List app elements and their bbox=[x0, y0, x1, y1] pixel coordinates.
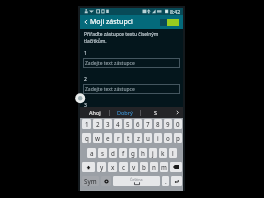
button[interactable]: d bbox=[109, 148, 117, 158]
button[interactable]: m bbox=[160, 162, 168, 172]
staticText: 1 bbox=[84, 50, 87, 57]
button[interactable]: y bbox=[97, 162, 106, 172]
staticText: 8 bbox=[156, 120, 160, 128]
button[interactable]: Zadejte text zástupce bbox=[83, 58, 180, 68]
button[interactable]: u bbox=[144, 133, 152, 143]
staticText: 7 bbox=[146, 120, 150, 128]
staticText: t bbox=[127, 134, 130, 142]
staticText: 6 bbox=[136, 120, 140, 128]
button[interactable]: Back bbox=[82, 15, 90, 29]
button[interactable]: t bbox=[124, 133, 132, 143]
staticText: n bbox=[152, 163, 156, 171]
button[interactable]: 0 bbox=[174, 119, 182, 129]
staticText: 3 bbox=[84, 102, 87, 109]
button[interactable]: More suggestions bbox=[171, 107, 183, 118]
staticText: z bbox=[137, 134, 140, 142]
staticText: m bbox=[161, 163, 167, 171]
staticText: Přiřaďte zástupce textu číselným tlačítk… bbox=[84, 31, 164, 44]
button[interactable]: k bbox=[159, 148, 167, 158]
staticText: p bbox=[176, 134, 180, 142]
staticText: 1 bbox=[85, 120, 89, 128]
staticText: e bbox=[106, 134, 110, 142]
staticText: Zadejte text zástupce bbox=[85, 60, 135, 67]
button[interactable]: g bbox=[129, 148, 137, 158]
staticText: 4 bbox=[116, 120, 120, 128]
button[interactable]: Zadejte text zástupce bbox=[83, 84, 180, 94]
button[interactable]: x bbox=[108, 162, 117, 172]
staticText: y bbox=[100, 163, 104, 171]
button[interactable]: 7 bbox=[144, 119, 152, 129]
staticText: o bbox=[166, 134, 170, 142]
button[interactable]: 8 bbox=[154, 119, 162, 129]
button[interactable]: 3 bbox=[104, 119, 112, 129]
staticText: f bbox=[122, 149, 125, 157]
button[interactable]: Ahoj bbox=[80, 107, 109, 118]
button[interactable]: 4 bbox=[114, 119, 122, 129]
staticText: j bbox=[152, 149, 154, 157]
staticText: Moji zástupci bbox=[90, 17, 133, 27]
staticText: 2 bbox=[96, 120, 100, 128]
staticText: Čeština bbox=[130, 177, 143, 182]
button[interactable]: S bbox=[141, 107, 171, 118]
button[interactable]: BACKSPACE bbox=[170, 162, 182, 172]
button[interactable]: SPACE bbox=[113, 176, 160, 186]
button[interactable]: b bbox=[140, 162, 148, 172]
button[interactable]: e bbox=[104, 133, 112, 143]
button[interactable]: 2 bbox=[93, 119, 102, 129]
staticText: d bbox=[111, 149, 115, 157]
staticText: 2 bbox=[84, 76, 87, 83]
staticText: S bbox=[154, 109, 158, 116]
staticText: Ahoj bbox=[89, 109, 101, 116]
button[interactable]: Sym bbox=[82, 176, 99, 186]
staticText: k bbox=[161, 149, 165, 157]
staticText: Dobrý bbox=[117, 109, 133, 116]
button[interactable]: c bbox=[119, 162, 128, 172]
button[interactable]: h bbox=[139, 148, 147, 158]
button[interactable]: l bbox=[169, 148, 177, 158]
button[interactable]: ENTER bbox=[171, 176, 182, 186]
button[interactable]: o bbox=[164, 133, 172, 143]
button[interactable]: w bbox=[93, 133, 102, 143]
staticText: Zadejte text zástupce bbox=[85, 112, 135, 119]
staticText: r bbox=[117, 134, 120, 142]
button[interactable]: i bbox=[154, 133, 162, 143]
staticText: Sym bbox=[84, 177, 97, 185]
staticText: a bbox=[90, 149, 94, 157]
staticText: w bbox=[95, 134, 100, 142]
staticText: l bbox=[172, 149, 174, 157]
button[interactable]: f bbox=[119, 148, 127, 158]
button[interactable]: Toggle shortcuts bbox=[160, 19, 179, 26]
staticText: g bbox=[131, 149, 135, 157]
button[interactable]: 6 bbox=[134, 119, 142, 129]
button[interactable]: 9 bbox=[164, 119, 172, 129]
staticText: 8:42 bbox=[170, 8, 181, 15]
button[interactable]: v bbox=[130, 162, 138, 172]
button[interactable]: z bbox=[134, 133, 142, 143]
button[interactable]: r bbox=[114, 133, 122, 143]
staticText: 3 bbox=[106, 120, 110, 128]
staticText: . bbox=[165, 177, 167, 185]
staticText: h bbox=[141, 149, 145, 157]
button[interactable]: 1 bbox=[82, 119, 91, 129]
staticText: b bbox=[142, 163, 146, 171]
staticText: Zadejte text zástupce bbox=[85, 86, 135, 93]
button[interactable]: Zadejte text zástupce bbox=[83, 110, 180, 120]
button[interactable]: Dobrý bbox=[110, 107, 140, 118]
button[interactable]: p bbox=[174, 133, 182, 143]
staticText: 5 bbox=[126, 120, 130, 128]
button[interactable]: s bbox=[98, 148, 107, 158]
button[interactable]: GEAR bbox=[101, 176, 111, 186]
staticText: 9 bbox=[166, 120, 170, 128]
button[interactable]: SHIFT bbox=[82, 162, 95, 172]
button[interactable]: n bbox=[150, 162, 158, 172]
staticText: v bbox=[132, 163, 136, 171]
staticText: x bbox=[111, 163, 115, 171]
button[interactable]: 5 bbox=[124, 119, 132, 129]
button[interactable]: a bbox=[87, 148, 96, 158]
button[interactable]: q bbox=[82, 133, 91, 143]
staticText: s bbox=[101, 149, 105, 157]
button[interactable]: j bbox=[149, 148, 157, 158]
staticText: u bbox=[146, 134, 150, 142]
staticText: i bbox=[157, 134, 159, 142]
button[interactable]: . bbox=[162, 176, 169, 186]
